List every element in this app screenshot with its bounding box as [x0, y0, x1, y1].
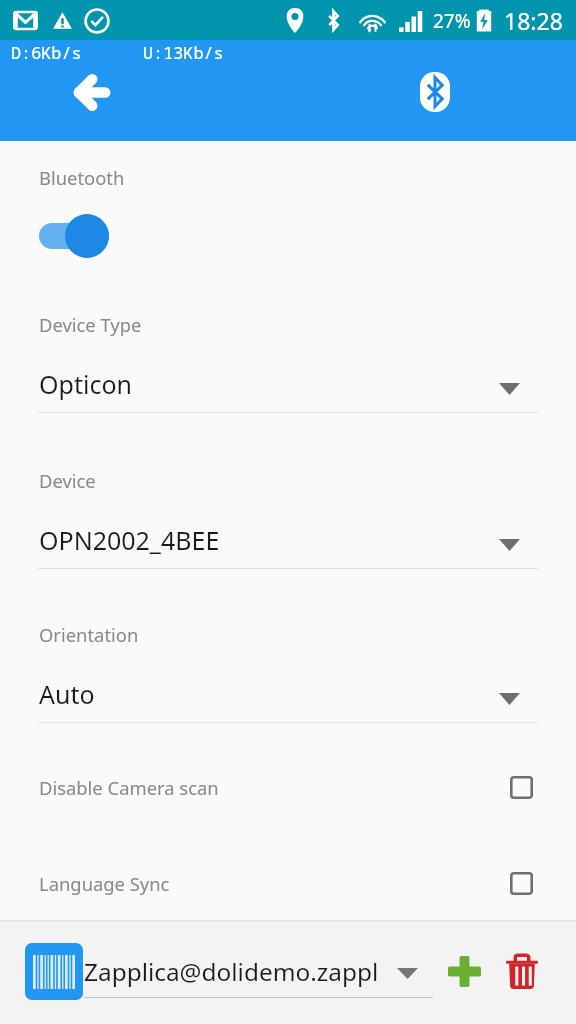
staticText: Device [39, 468, 96, 493]
button[interactable]: Bluetooth settings [411, 68, 459, 116]
staticText: Orientation [39, 622, 139, 647]
staticText: Language Sync [39, 871, 170, 896]
staticText: 18:28 [504, 5, 563, 36]
staticText: 27% [433, 8, 471, 34]
staticText: Bluetooth [39, 165, 125, 190]
staticText: Device Type [39, 312, 142, 337]
button[interactable]: Disable Camera scan [39, 764, 533, 810]
staticText: D:6Kb/s [11, 41, 82, 64]
staticText: U:13Kb/s [143, 41, 224, 64]
button[interactable]: Delete [500, 950, 544, 994]
button[interactable]: Language Sync [39, 860, 533, 906]
staticText: Auto [39, 677, 95, 711]
button[interactable]: Device Type [0, 312, 576, 424]
button[interactable]: Barcode [25, 943, 83, 1000]
staticText: OPN2002_4BEE [39, 523, 220, 557]
button[interactable]: Select profile [389, 958, 425, 988]
staticText: Opticon [39, 367, 132, 401]
button[interactable] [38, 211, 113, 261]
button[interactable]: Device [0, 468, 576, 580]
button[interactable]: Back [66, 68, 114, 116]
button[interactable]: Orientation [0, 622, 576, 734]
staticText: Disable Camera scan [39, 775, 219, 800]
button[interactable]: Add [442, 949, 486, 993]
staticText: Zapplica@dolidemo.zappl [84, 955, 379, 988]
